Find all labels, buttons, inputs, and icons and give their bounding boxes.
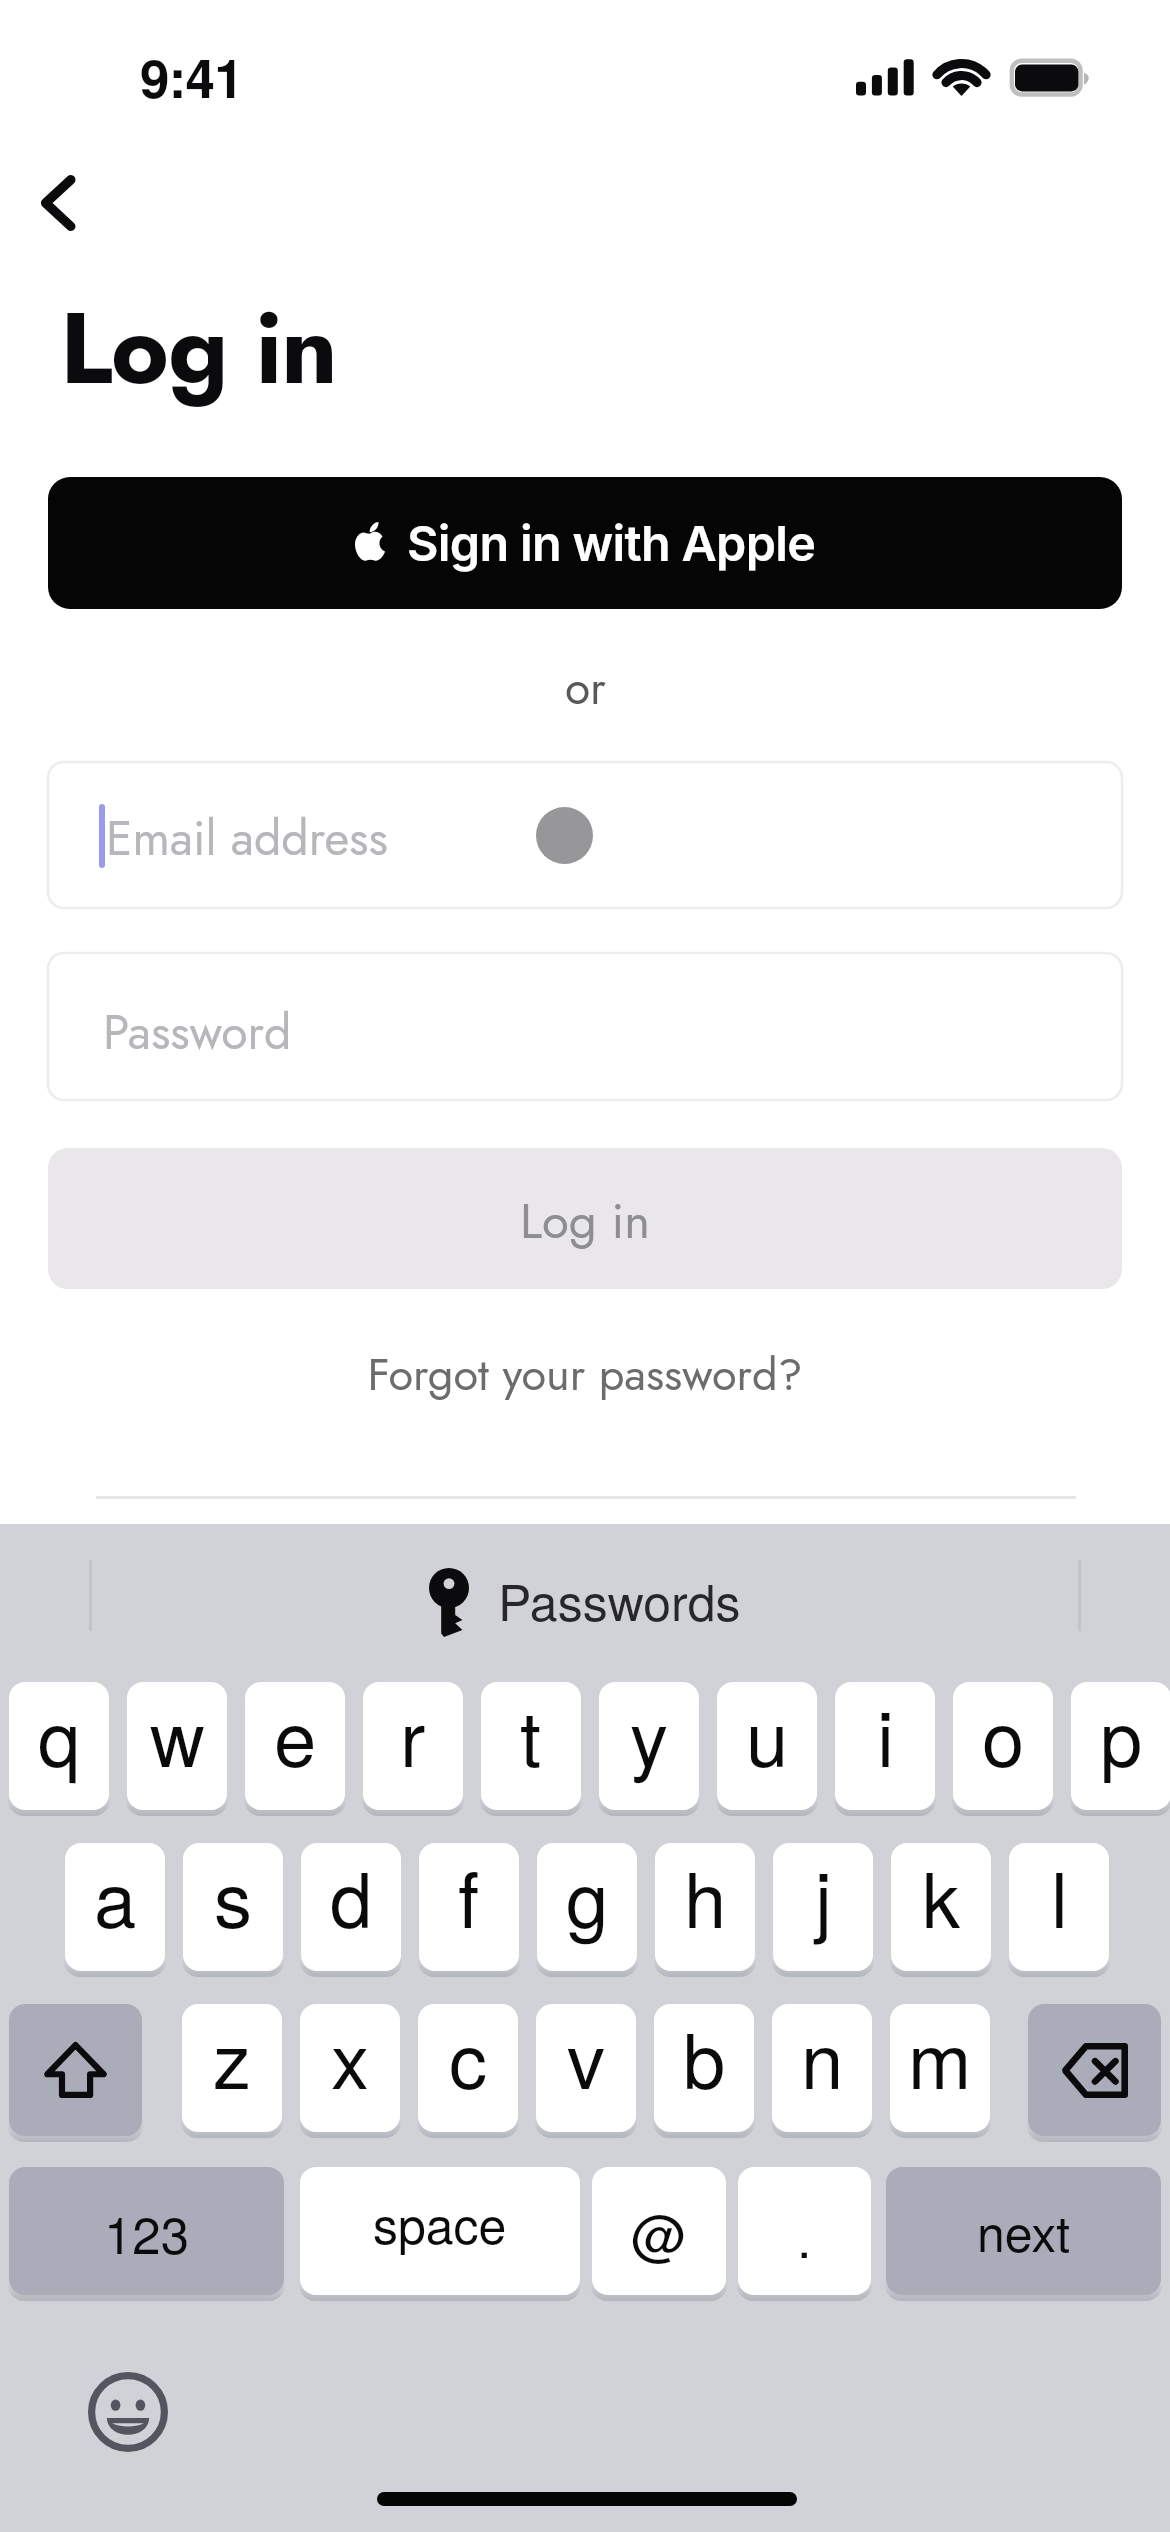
button[interactable]: u: [717, 1682, 817, 1810]
button[interactable]: q: [9, 1682, 109, 1810]
staticText: Log in: [520, 1186, 650, 1257]
staticText: g: [566, 1843, 609, 1950]
button[interactable]: Numbers: [9, 2167, 284, 2295]
button[interactable]: n: [772, 2004, 872, 2132]
button[interactable]: t: [481, 1682, 581, 1810]
staticText: a: [94, 1843, 137, 1950]
button[interactable]: Sign in with Apple: [48, 477, 1122, 609]
staticText: p: [1100, 1682, 1143, 1789]
button[interactable]: h: [655, 1843, 755, 1971]
staticText: 9:41: [140, 38, 243, 114]
button[interactable]: j: [773, 1843, 873, 1971]
button[interactable]: d: [301, 1843, 401, 1971]
button[interactable]: r: [363, 1682, 463, 1810]
staticText: r: [400, 1682, 426, 1789]
staticText: h: [684, 1843, 727, 1950]
button[interactable]: Emoji keyboard: [88, 2372, 168, 2452]
button[interactable]: b: [654, 2004, 754, 2132]
button[interactable]: i: [835, 1682, 935, 1810]
button[interactable]: s: [183, 1843, 283, 1971]
button[interactable]: Forgot your password?: [0, 1328, 1170, 1420]
button[interactable]: space: [300, 2167, 580, 2295]
staticText: f: [458, 1843, 480, 1950]
button[interactable]: Log in: [48, 1148, 1122, 1289]
staticText: space: [373, 2187, 507, 2259]
staticText: Log in: [60, 277, 337, 420]
staticText: v: [567, 2004, 605, 2111]
button[interactable]: m: [890, 2004, 990, 2132]
staticText: u: [746, 1682, 789, 1789]
staticText: k: [922, 1843, 960, 1950]
staticText: w: [150, 1682, 205, 1789]
staticText: @: [631, 2193, 687, 2272]
button[interactable]: k: [891, 1843, 991, 1971]
staticText: j: [815, 1843, 832, 1950]
button[interactable]: v: [536, 2004, 636, 2132]
staticText: z: [213, 2004, 251, 2111]
button[interactable]: Backspace: [1028, 2004, 1161, 2136]
staticText: Passwords: [498, 1564, 741, 1636]
staticText: l: [1051, 1843, 1068, 1950]
button[interactable]: g: [537, 1843, 637, 1971]
button[interactable]: .: [738, 2167, 871, 2295]
staticText: next: [977, 2195, 1071, 2267]
staticText: x: [331, 2004, 369, 2111]
staticText: Forgot your password?: [367, 1342, 803, 1407]
button[interactable]: o: [953, 1682, 1053, 1810]
button[interactable]: x: [300, 2004, 400, 2132]
button[interactable]: Next: [886, 2167, 1161, 2295]
button[interactable]: Shift: [9, 2004, 142, 2136]
staticText: Password: [103, 998, 292, 1067]
staticText: d: [330, 1843, 373, 1950]
staticText: q: [38, 1682, 81, 1789]
staticText: .: [797, 2198, 812, 2272]
staticText: n: [801, 2004, 844, 2111]
button[interactable]: z: [182, 2004, 282, 2132]
staticText: s: [214, 1843, 252, 1950]
staticText: Email address: [106, 804, 388, 873]
staticText: 123: [104, 2195, 190, 2268]
button[interactable]: l: [1009, 1843, 1109, 1971]
staticText: o: [982, 1682, 1025, 1789]
staticText: Sign in with Apple: [407, 514, 816, 573]
button[interactable]: Passwords: [0, 1550, 1170, 1650]
button[interactable]: @: [592, 2167, 726, 2295]
staticText: c: [449, 2004, 487, 2111]
button[interactable]: Password: [48, 953, 1122, 1100]
staticText: or: [565, 655, 606, 721]
button[interactable]: Back: [11, 155, 107, 251]
staticText: i: [877, 1682, 894, 1789]
button[interactable]: a: [65, 1843, 165, 1971]
button[interactable]: c: [418, 2004, 518, 2132]
button[interactable]: p: [1071, 1682, 1170, 1810]
staticText: m: [908, 2004, 972, 2111]
staticText: e: [274, 1682, 317, 1789]
button[interactable]: Email address: [48, 762, 1122, 908]
button[interactable]: e: [245, 1682, 345, 1810]
staticText: y: [630, 1682, 668, 1789]
button[interactable]: f: [419, 1843, 519, 1971]
button[interactable]: w: [127, 1682, 227, 1810]
button[interactable]: y: [599, 1682, 699, 1810]
staticText: b: [683, 2004, 726, 2111]
staticText: t: [520, 1682, 542, 1789]
